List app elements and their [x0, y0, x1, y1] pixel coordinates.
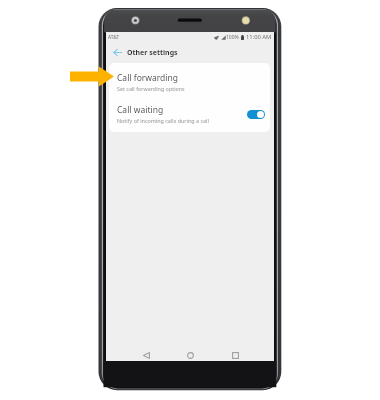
button[interactable]: Back [139, 350, 153, 361]
button[interactable]: Navigate up [111, 46, 124, 59]
staticText: AT&T [108, 34, 120, 41]
staticText: Call forwarding [117, 72, 179, 84]
button[interactable]: Home [183, 350, 197, 361]
button[interactable]: Call waiting switch, on [247, 110, 265, 119]
staticText: Notify of incoming calls during a call [117, 117, 209, 124]
button[interactable]: Recent apps [228, 350, 242, 361]
staticText: Other settings [127, 48, 178, 58]
staticText: 100% [226, 34, 239, 41]
button[interactable]: Call forwarding [109, 66, 270, 98]
button[interactable]: Call waiting [109, 98, 270, 130]
staticText: 11:00 AM [246, 33, 272, 41]
staticText: Set call forwarding options [117, 85, 185, 92]
staticText: Call waiting [117, 104, 164, 116]
